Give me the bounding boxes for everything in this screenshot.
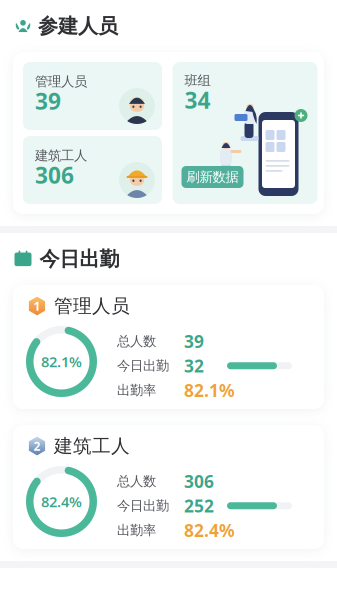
staticText: 2 [33,438,40,454]
staticText: 82.4% [41,492,82,511]
staticText: 建筑工人 [54,434,130,457]
staticText: 出勤率 [117,382,156,398]
staticText: 今日出勤 [117,498,169,514]
button[interactable]: 今日出勤 [0,233,336,285]
staticText: 今日出勤 [117,358,169,374]
staticText: 82.1% [41,352,82,371]
staticText: 32 [184,354,204,377]
staticText: 班组 [184,72,210,89]
staticText: 刷新数据 [186,169,238,185]
staticText: 39 [184,330,204,353]
staticText: 252 [184,494,214,517]
staticText: 管理人员 [35,73,87,90]
staticText: 306 [184,470,214,493]
staticText: 82.1% [184,379,235,402]
staticText: 306 [35,160,74,190]
staticText: 建筑工人 [35,147,87,164]
staticText: 39 [35,86,61,116]
button[interactable]: 刷新数据 [181,166,243,188]
staticText: 总人数 [117,473,156,489]
staticText: 34 [184,85,210,115]
button[interactable]: 参建人员 [0,0,337,52]
staticText: 82.4% [184,519,235,542]
staticText: 管理人员 [54,294,130,317]
staticText: 出勤率 [117,522,156,538]
staticText: 今日出勤 [39,247,119,271]
staticText: 1 [33,298,40,314]
staticText: 总人数 [117,333,156,349]
staticText: 参建人员 [38,14,118,38]
